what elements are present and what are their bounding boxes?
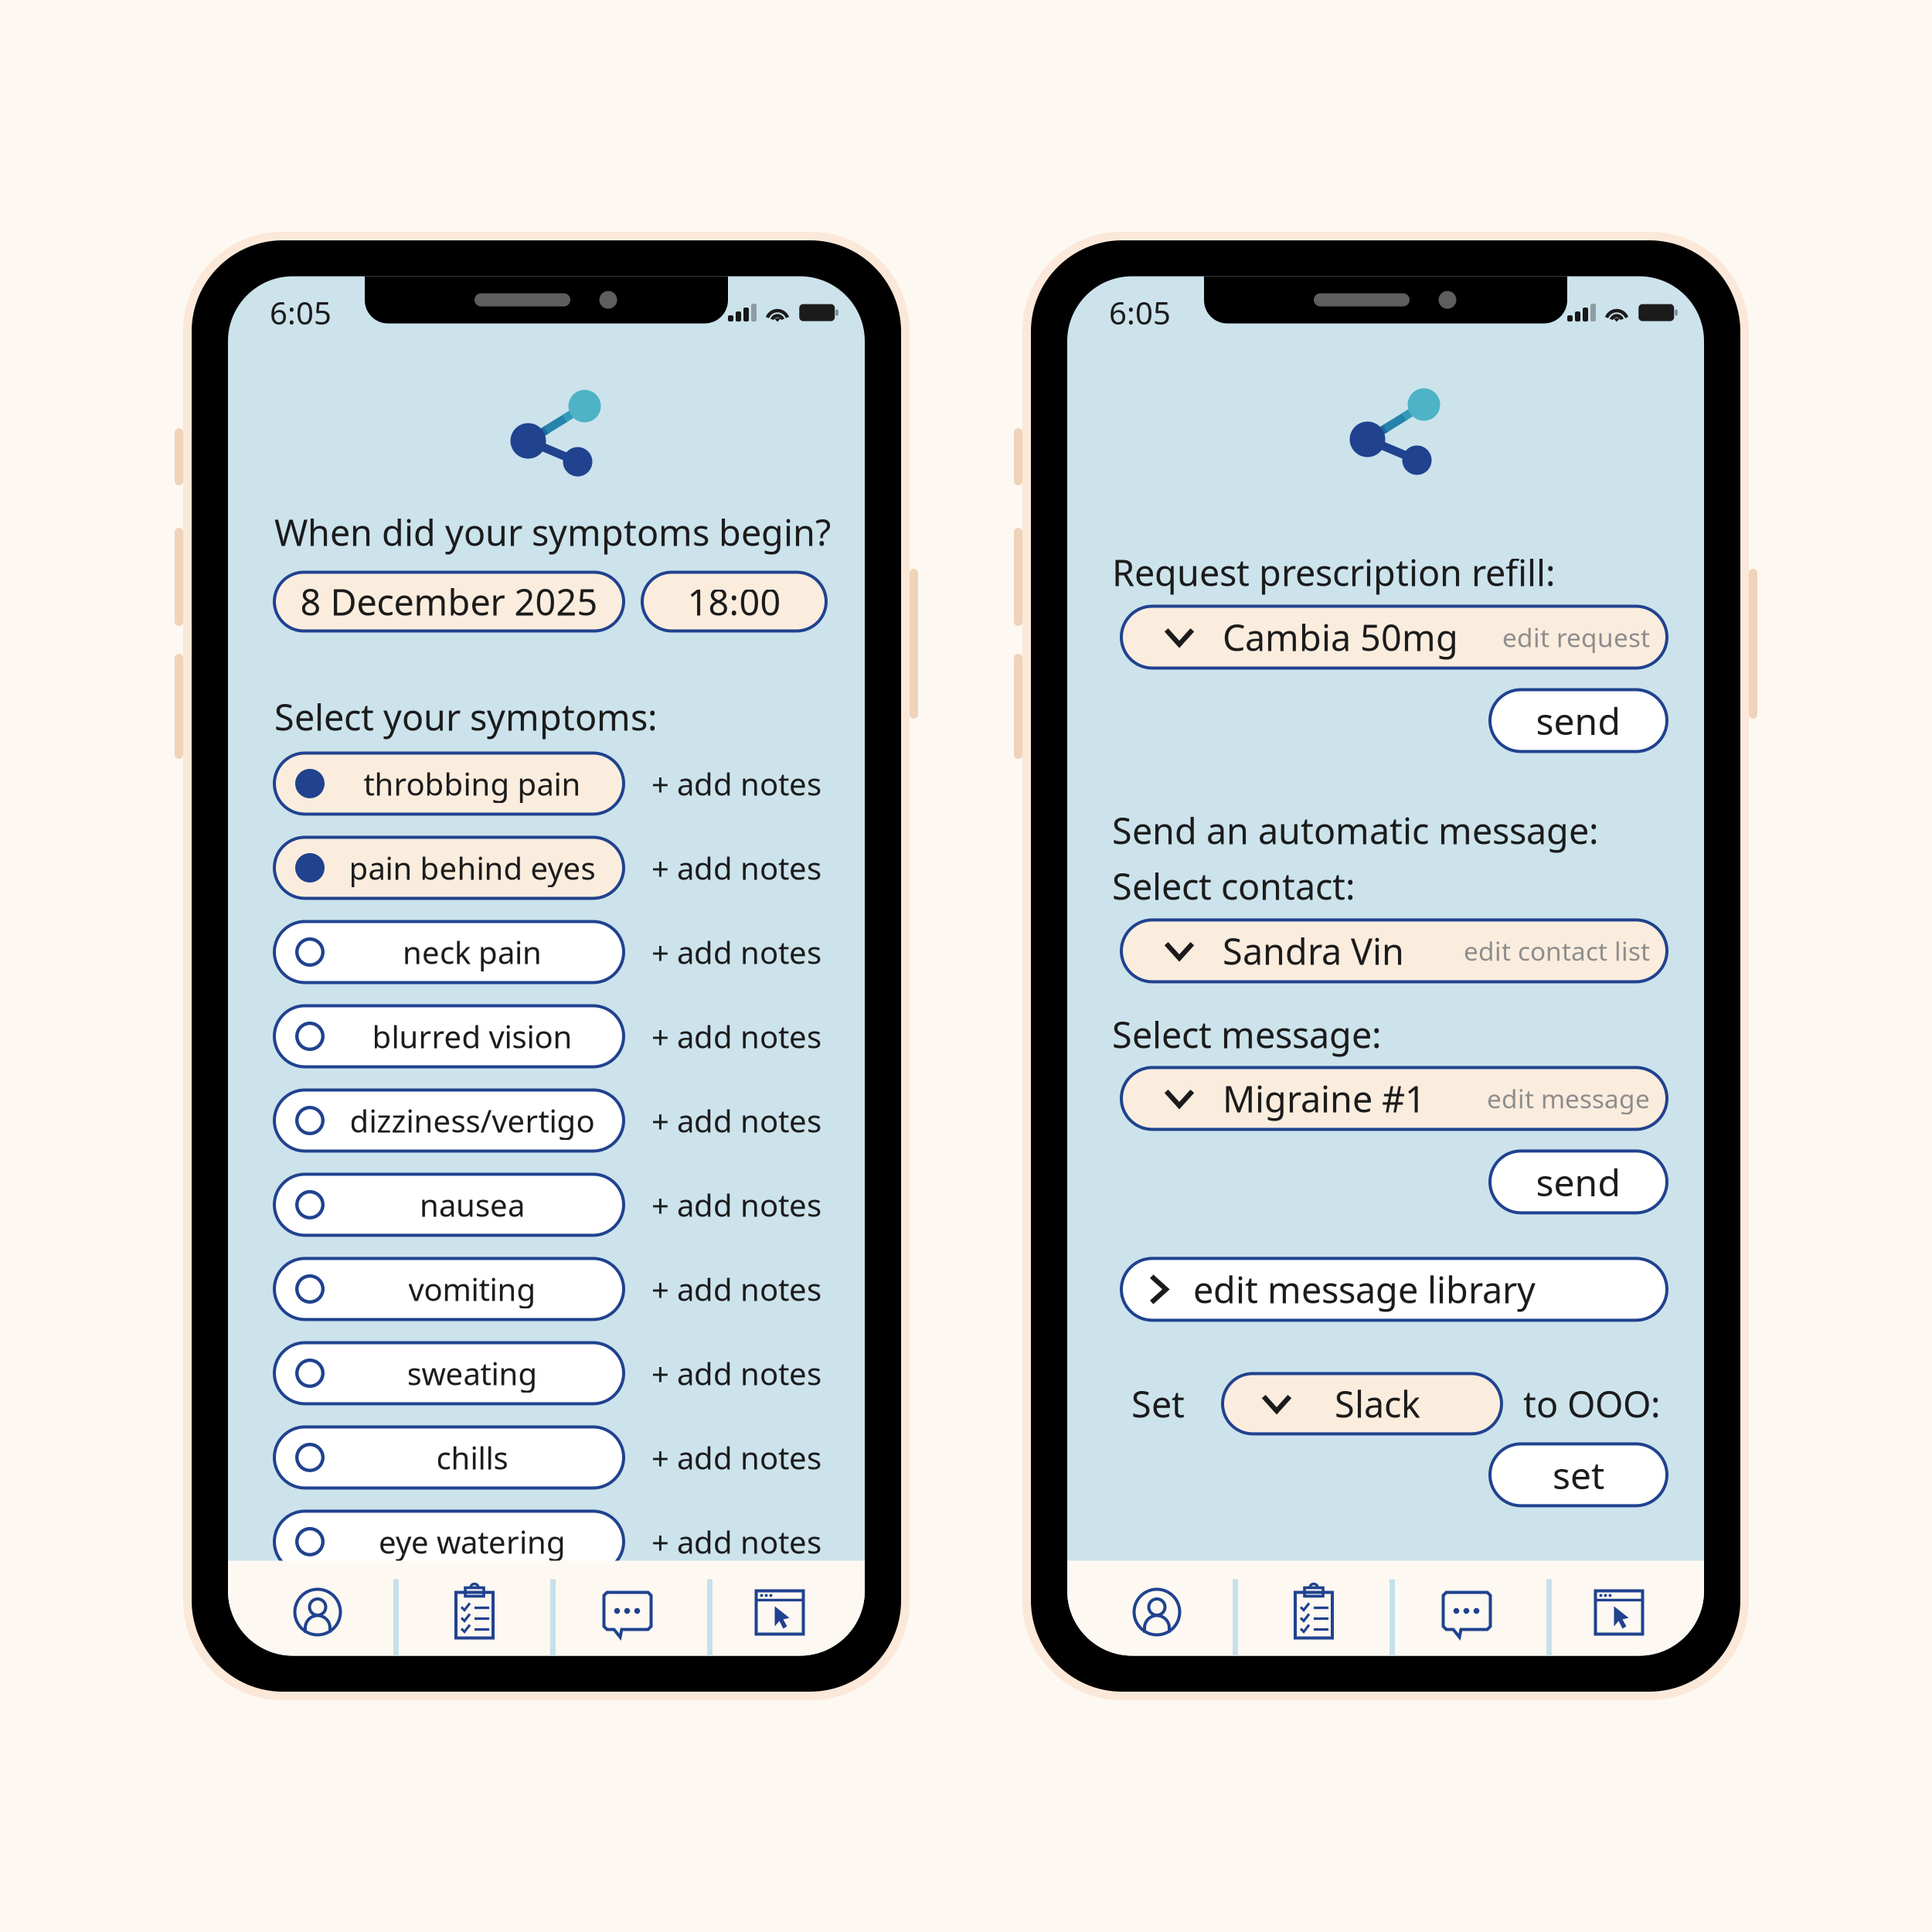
staticText: throbbing pain bbox=[364, 763, 581, 804]
staticText: 6:05 bbox=[270, 292, 332, 333]
staticText: blurred vision bbox=[372, 1016, 572, 1057]
button[interactable]: + add notes bbox=[651, 1258, 837, 1319]
staticText: + add notes bbox=[651, 1521, 821, 1562]
staticText: edit message bbox=[1487, 1081, 1650, 1116]
staticText: 18:00 bbox=[687, 578, 781, 626]
button[interactable]: + add notes bbox=[651, 1511, 837, 1572]
staticText: pain behind eyes bbox=[349, 847, 595, 888]
button[interactable]: nausea bbox=[274, 1174, 624, 1235]
staticText: + add notes bbox=[651, 763, 821, 804]
staticText: edit contact list bbox=[1464, 934, 1650, 968]
button[interactable]: dizziness/vertigo bbox=[274, 1090, 624, 1151]
button[interactable]: + add notes bbox=[651, 1174, 837, 1235]
button[interactable]: pain behind eyes bbox=[274, 837, 624, 898]
staticText: Select contact: bbox=[1112, 862, 1355, 910]
button[interactable]: chills bbox=[274, 1427, 624, 1488]
staticText: + add notes bbox=[651, 1016, 821, 1057]
staticText: edit request bbox=[1502, 620, 1650, 654]
staticText: Select message: bbox=[1112, 1010, 1382, 1058]
button[interactable]: + add notes bbox=[651, 753, 837, 814]
staticText: When did your symptoms begin? bbox=[274, 508, 831, 556]
staticText: Cambia 50mg bbox=[1223, 613, 1458, 661]
button[interactable]: Sandra Vin bbox=[1121, 920, 1667, 982]
staticText: to OOO: bbox=[1523, 1380, 1661, 1428]
button[interactable]: + add notes bbox=[651, 837, 837, 898]
staticText: vomiting bbox=[408, 1268, 536, 1310]
button[interactable]: + add notes bbox=[651, 1343, 837, 1404]
staticText: Request prescription refill: bbox=[1112, 548, 1556, 596]
button[interactable]: send bbox=[1490, 1151, 1667, 1213]
staticText: Sandra Vin bbox=[1223, 927, 1404, 975]
button[interactable]: vomiting bbox=[274, 1258, 624, 1319]
button[interactable]: Messages bbox=[1395, 1561, 1546, 1656]
staticText: sweating bbox=[407, 1353, 537, 1394]
staticText: + add notes bbox=[651, 1184, 821, 1225]
staticText: + add notes bbox=[651, 1353, 821, 1394]
button[interactable]: Messages bbox=[556, 1561, 707, 1656]
staticText: Select your symptoms: bbox=[274, 693, 658, 741]
button[interactable]: throbbing pain bbox=[274, 753, 624, 814]
staticText: 6:05 bbox=[1109, 292, 1171, 333]
staticText: send bbox=[1536, 1157, 1621, 1206]
staticText: + add notes bbox=[651, 1100, 821, 1141]
button[interactable]: edit message library bbox=[1121, 1258, 1667, 1320]
button[interactable]: + add notes bbox=[651, 1427, 837, 1488]
button[interactable]: 8 December 2025 bbox=[274, 572, 624, 631]
button[interactable]: send bbox=[1490, 690, 1667, 752]
button[interactable]: Migraine #1 bbox=[1121, 1068, 1667, 1129]
staticText: Migraine #1 bbox=[1223, 1075, 1426, 1122]
button[interactable]: + add notes bbox=[651, 1090, 837, 1151]
staticText: edit message library bbox=[1193, 1265, 1536, 1313]
staticText: dizziness/vertigo bbox=[350, 1100, 595, 1141]
staticText: + add notes bbox=[651, 932, 821, 973]
button[interactable]: Browser bbox=[1552, 1561, 1703, 1656]
button[interactable]: Browser bbox=[713, 1561, 864, 1656]
staticText: eye watering bbox=[379, 1521, 566, 1562]
button[interactable]: Symptom log bbox=[399, 1561, 550, 1656]
button[interactable]: sweating bbox=[274, 1343, 624, 1404]
staticText: Slack bbox=[1335, 1380, 1420, 1428]
button[interactable]: neck pain bbox=[274, 921, 624, 983]
staticText: send bbox=[1536, 696, 1621, 745]
staticText: 8 December 2025 bbox=[300, 578, 598, 626]
staticText: Set bbox=[1131, 1380, 1185, 1428]
staticText: + add notes bbox=[651, 1268, 821, 1310]
staticText: nausea bbox=[420, 1184, 525, 1225]
staticText: Send an automatic message: bbox=[1112, 806, 1599, 854]
button[interactable]: Profile bbox=[242, 1561, 393, 1656]
button[interactable]: blurred vision bbox=[274, 1006, 624, 1067]
button[interactable]: + add notes bbox=[651, 1006, 837, 1067]
button[interactable]: set bbox=[1490, 1444, 1667, 1506]
staticText: set bbox=[1553, 1450, 1604, 1499]
staticText: chills bbox=[436, 1437, 508, 1478]
button[interactable]: Profile bbox=[1081, 1561, 1233, 1656]
button[interactable]: Slack bbox=[1223, 1374, 1502, 1434]
staticText: neck pain bbox=[403, 932, 542, 973]
button[interactable]: + add notes bbox=[651, 921, 837, 983]
button[interactable]: eye watering bbox=[274, 1511, 624, 1572]
button[interactable]: Cambia 50mg bbox=[1121, 606, 1667, 668]
button[interactable]: Symptom log bbox=[1238, 1561, 1389, 1656]
button[interactable]: 18:00 bbox=[642, 572, 826, 631]
staticText: + add notes bbox=[651, 847, 821, 888]
staticText: + add notes bbox=[651, 1437, 821, 1478]
